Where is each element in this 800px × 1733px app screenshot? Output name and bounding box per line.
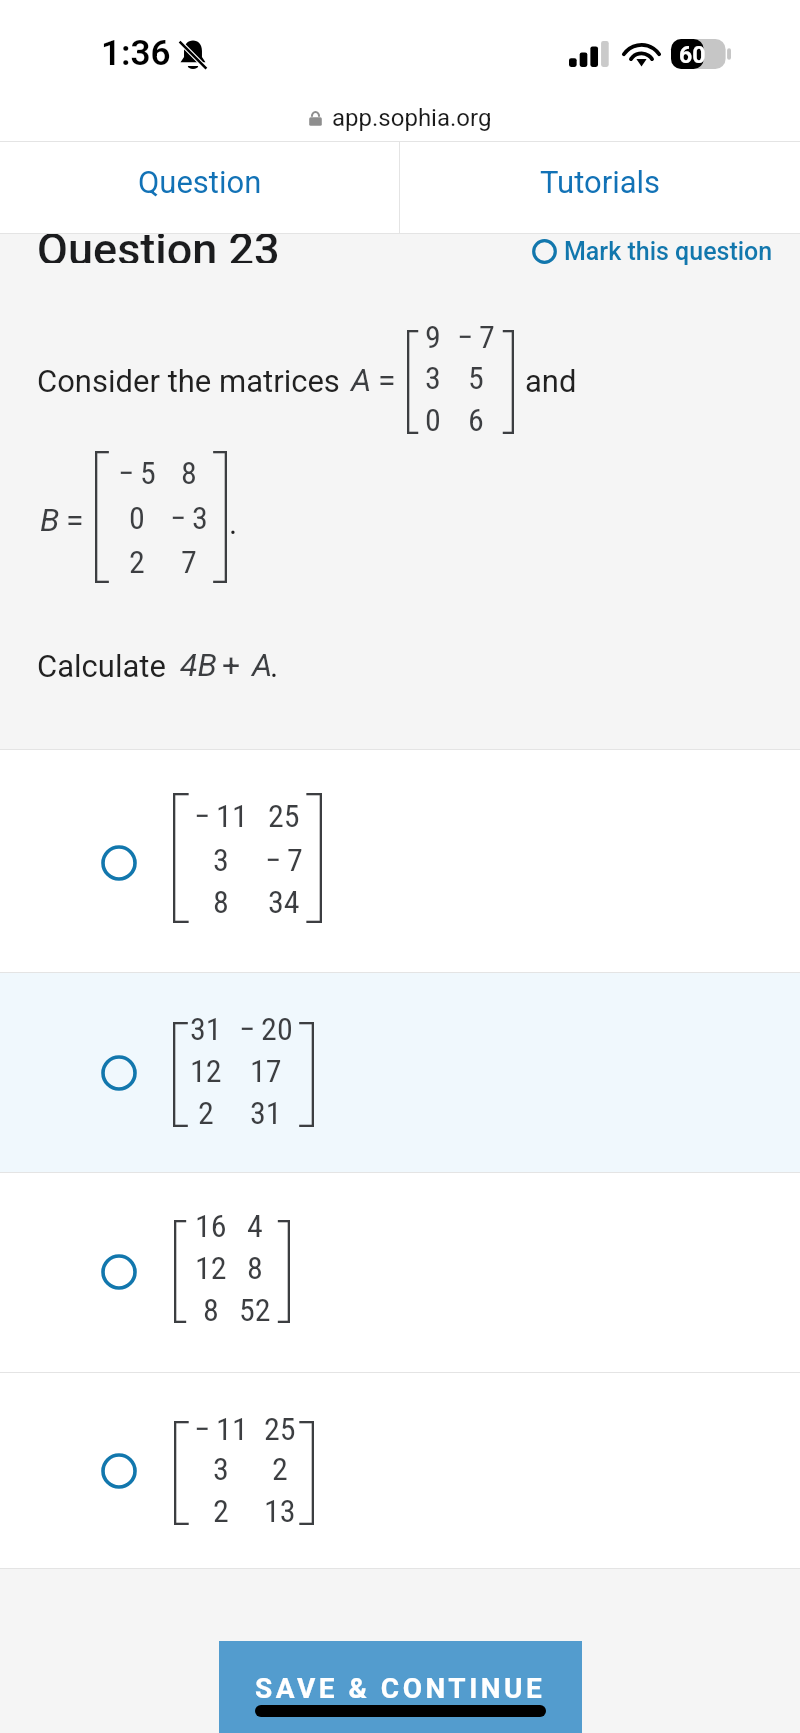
staticText: 25 — [264, 1410, 296, 1448]
staticText: 34 — [268, 883, 300, 921]
staticText: 16 — [195, 1207, 227, 1245]
staticText: 2 — [129, 543, 145, 581]
button[interactable]: Mark this question — [532, 237, 773, 266]
button[interactable]: Select answer — [101, 1055, 137, 1091]
staticText: − 3 — [170, 499, 208, 537]
staticText: 6 — [468, 401, 484, 439]
staticText: Calculate — [37, 648, 166, 684]
button[interactable]: Tutorials — [400, 142, 800, 233]
staticText: 31 — [190, 1010, 222, 1048]
staticText: 13 — [264, 1492, 296, 1530]
staticText: 2 — [198, 1094, 214, 1132]
button[interactable]: Select answer — [101, 1453, 137, 1489]
staticText: − 11 — [194, 1410, 248, 1448]
staticText: Question — [138, 164, 262, 200]
button[interactable] — [0, 1173, 800, 1372]
staticText: 3 — [213, 1450, 229, 1488]
staticText: 5 — [468, 359, 484, 397]
staticText: Tutorials — [540, 164, 661, 200]
staticText: Question 23 — [37, 234, 280, 263]
staticText: = — [378, 361, 396, 399]
button[interactable] — [0, 1373, 800, 1568]
staticText: 8 — [247, 1249, 263, 1287]
button[interactable] — [0, 973, 800, 1172]
staticText: 3 — [213, 841, 229, 879]
button[interactable] — [0, 750, 800, 972]
staticText: A — [351, 361, 372, 399]
staticText: 12 — [190, 1052, 222, 1090]
button[interactable]: Question — [0, 142, 399, 233]
staticText: 12 — [195, 1249, 227, 1287]
staticText: 2 — [272, 1450, 288, 1488]
staticText: 7 — [181, 543, 197, 581]
staticText: − 7 — [457, 318, 495, 356]
staticText: 52 — [239, 1291, 271, 1329]
button[interactable]: SAVE & CONTINUE — [219, 1641, 582, 1733]
staticText: . — [229, 505, 238, 541]
button[interactable]: Select answer — [101, 1254, 137, 1290]
staticText: 4B — [180, 646, 217, 684]
staticText: app.sophia.org — [332, 104, 492, 132]
staticText: and — [525, 363, 577, 399]
staticText: − 11 — [194, 797, 248, 835]
staticText: 8 — [181, 454, 197, 492]
staticText: 4 — [247, 1207, 263, 1245]
staticText: 1:36 — [101, 33, 171, 74]
staticText: + — [222, 646, 241, 684]
staticText: 31 — [250, 1094, 282, 1132]
staticText: Consider the matrices — [37, 363, 340, 399]
staticText: Mark this question — [564, 237, 773, 266]
staticText: 25 — [268, 797, 300, 835]
button[interactable]: Select answer — [101, 845, 137, 881]
staticText: B — [40, 501, 60, 539]
staticText: A — [252, 646, 273, 684]
staticText: 9 — [425, 318, 441, 356]
staticText: 0 — [129, 499, 145, 537]
staticText: = — [66, 501, 84, 539]
staticText: − 7 — [265, 841, 303, 879]
staticText: 60 — [679, 42, 706, 69]
staticText: − 20 — [239, 1010, 293, 1048]
staticText: 0 — [425, 401, 441, 439]
staticText: 17 — [250, 1052, 282, 1090]
staticText: 3 — [425, 359, 441, 397]
staticText: 8 — [203, 1291, 219, 1329]
staticText: − 5 — [118, 454, 156, 492]
button[interactable]: app.sophia.org — [0, 95, 800, 141]
staticText: 2 — [213, 1492, 229, 1530]
staticText: 8 — [213, 883, 229, 921]
staticText: SAVE & CONTINUE — [255, 1672, 546, 1705]
staticText: . — [270, 648, 279, 684]
